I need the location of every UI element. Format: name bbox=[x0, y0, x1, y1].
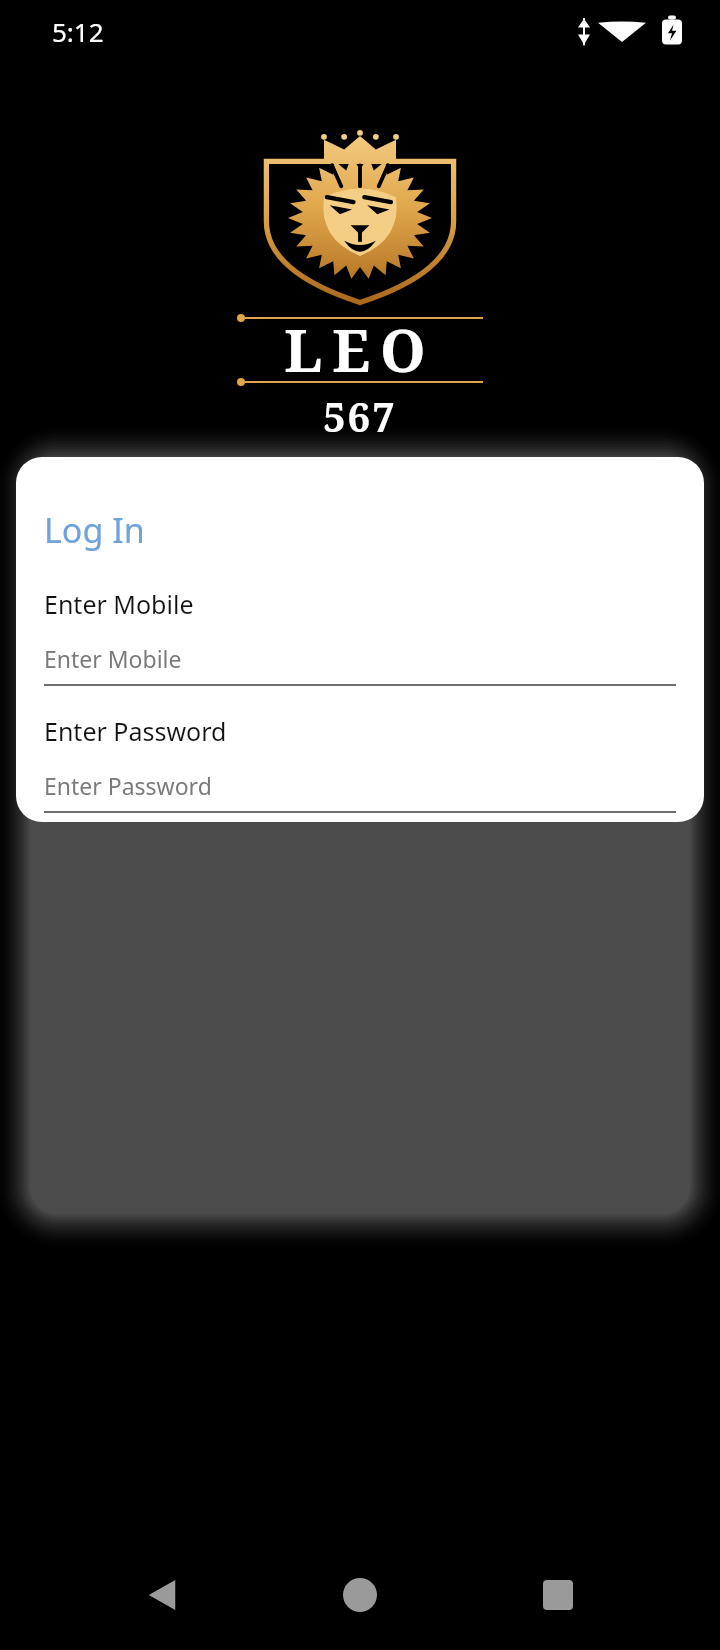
button[interactable]: Home bbox=[325, 1560, 395, 1630]
button[interactable]: Recents bbox=[523, 1560, 593, 1630]
button[interactable]: Enter Mobile bbox=[44, 643, 676, 686]
staticText: Enter Password bbox=[44, 770, 212, 801]
staticText: Enter Password bbox=[44, 714, 227, 748]
button[interactable]: Enter Password bbox=[44, 770, 676, 813]
staticText: Enter Mobile bbox=[44, 643, 182, 674]
staticText: LEO bbox=[284, 310, 436, 389]
staticText: Log In bbox=[44, 507, 145, 553]
staticText: 567 bbox=[323, 389, 397, 443]
button[interactable]: Back bbox=[128, 1560, 198, 1630]
staticText: 5:12 bbox=[52, 14, 104, 49]
staticText: Enter Mobile bbox=[44, 587, 194, 621]
